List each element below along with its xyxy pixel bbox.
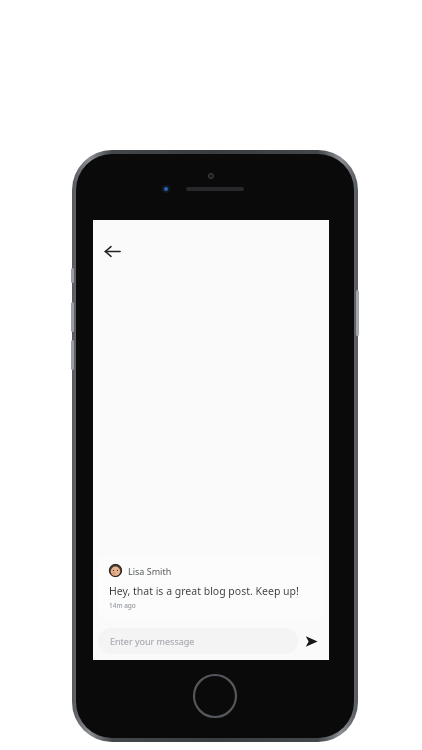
button[interactable]: Send — [298, 628, 324, 654]
staticText: Enter your message — [110, 635, 195, 647]
other: Volume down — [71, 340, 74, 370]
staticText: Hey, that is a great blog post. Keep up! — [109, 584, 299, 598]
button[interactable]: Back — [97, 236, 127, 266]
other: Silent switch — [71, 268, 74, 283]
staticText: Lisa Smith — [128, 565, 172, 577]
button[interactable]: Lisa Smith — [98, 555, 324, 620]
staticText: 14m ago — [109, 601, 136, 610]
other: Volume up — [71, 302, 74, 332]
button[interactable]: Enter your message — [98, 628, 298, 654]
button[interactable]: Home — [191, 672, 239, 720]
other: Power — [356, 290, 359, 336]
